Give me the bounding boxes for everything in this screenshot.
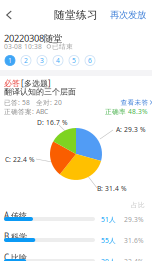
staticText: 正确答案: ABC — [4, 107, 48, 116]
staticText: 51人 — [101, 215, 116, 224]
staticText: C: 22.4 % — [5, 155, 35, 164]
staticText: 1 — [8, 56, 12, 65]
button[interactable]: 4 — [53, 55, 63, 65]
staticText: 39人 — [101, 257, 116, 261]
button[interactable]: 查看未答 — [120, 98, 152, 106]
staticText: 5 — [72, 56, 76, 65]
staticText: B.科学 — [4, 231, 27, 242]
staticText: 20220308随堂 — [4, 32, 62, 44]
staticText: 查看未答 — [120, 98, 148, 106]
button[interactable]: 3 — [37, 55, 47, 65]
staticText: 6 — [88, 56, 92, 65]
staticText: A.传统 — [4, 210, 27, 221]
staticText: 全对: 20 — [36, 98, 62, 107]
staticText: 31.6% — [124, 236, 144, 245]
staticText: B: 31.4 % — [97, 184, 127, 193]
staticText: [多选题] — [21, 78, 51, 89]
button[interactable]: 6 — [85, 55, 95, 65]
button[interactable]: 1 — [5, 55, 15, 65]
staticText: 55人 — [101, 236, 116, 245]
button[interactable]: 2 — [21, 55, 31, 65]
button[interactable]: 5 — [69, 55, 79, 65]
button[interactable]: Back — [0, 3, 18, 27]
staticText: 随堂练习 — [54, 8, 98, 21]
staticText: 29.3% — [124, 215, 144, 224]
staticText: D: 16.7 % — [37, 118, 68, 127]
staticText: A: 29.3 % — [116, 125, 146, 134]
staticText: 2 — [24, 56, 28, 65]
staticText: 4 — [56, 56, 60, 65]
staticText: 翻译认知的三个层面 — [4, 87, 76, 97]
button[interactable]: 再次发放 — [110, 3, 152, 27]
staticText: 3 — [40, 56, 44, 65]
staticText: C.比喻 — [4, 252, 27, 261]
staticText: 已结束 — [52, 42, 73, 50]
staticText: 再次发放 — [110, 9, 146, 21]
staticText: 22.4% — [124, 257, 144, 261]
staticText: 03-08 10:38 — [4, 42, 42, 51]
staticText: 占比 — [131, 201, 145, 209]
staticText: 正确率 48.3% — [105, 107, 148, 116]
staticText: 已答: 58 — [4, 98, 30, 107]
staticText: 必答 — [4, 78, 20, 88]
